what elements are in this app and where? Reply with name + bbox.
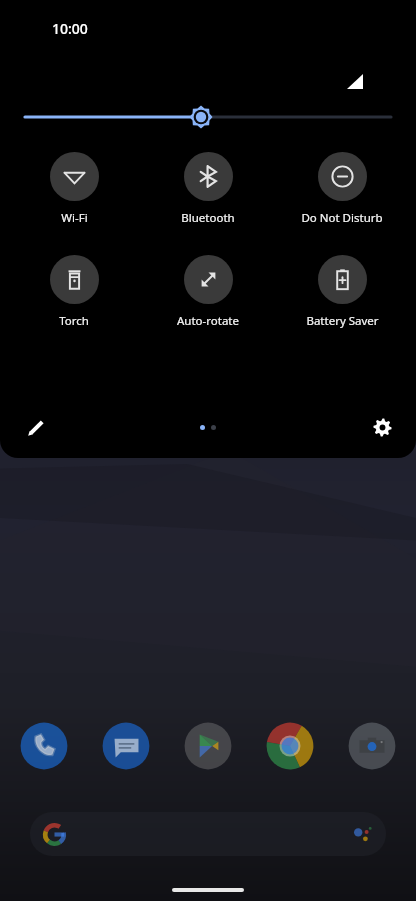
button[interactable]: Bluetooth [148,152,268,226]
staticText: Torch [59,313,89,329]
button[interactable]: Auto-rotate [148,255,268,329]
staticText: Wi-Fi [61,210,88,226]
button[interactable]: Edit tiles [14,405,58,449]
button[interactable]: Torch [14,255,134,329]
staticText: Battery Saver [306,313,379,329]
button[interactable]: Settings [360,405,404,449]
button[interactable]: Do Not Disturb [282,152,402,226]
staticText: Bluetooth [181,210,235,226]
other: Mobile signal [347,74,363,89]
button[interactable]: Messages [100,720,152,772]
button[interactable]: Chrome [264,720,316,772]
button[interactable]: Search [30,812,386,856]
staticText: Auto-rotate [177,313,239,329]
button[interactable]: Phone [18,720,70,772]
button[interactable]: Wi-Fi [14,152,134,226]
button[interactable]: Brightness [0,100,416,134]
staticText: Do Not Disturb [301,210,383,226]
button[interactable]: Camera [346,720,398,772]
staticText: 10:00 [52,19,88,38]
button[interactable]: Battery Saver [282,255,402,329]
button[interactable]: Play Store [182,720,234,772]
